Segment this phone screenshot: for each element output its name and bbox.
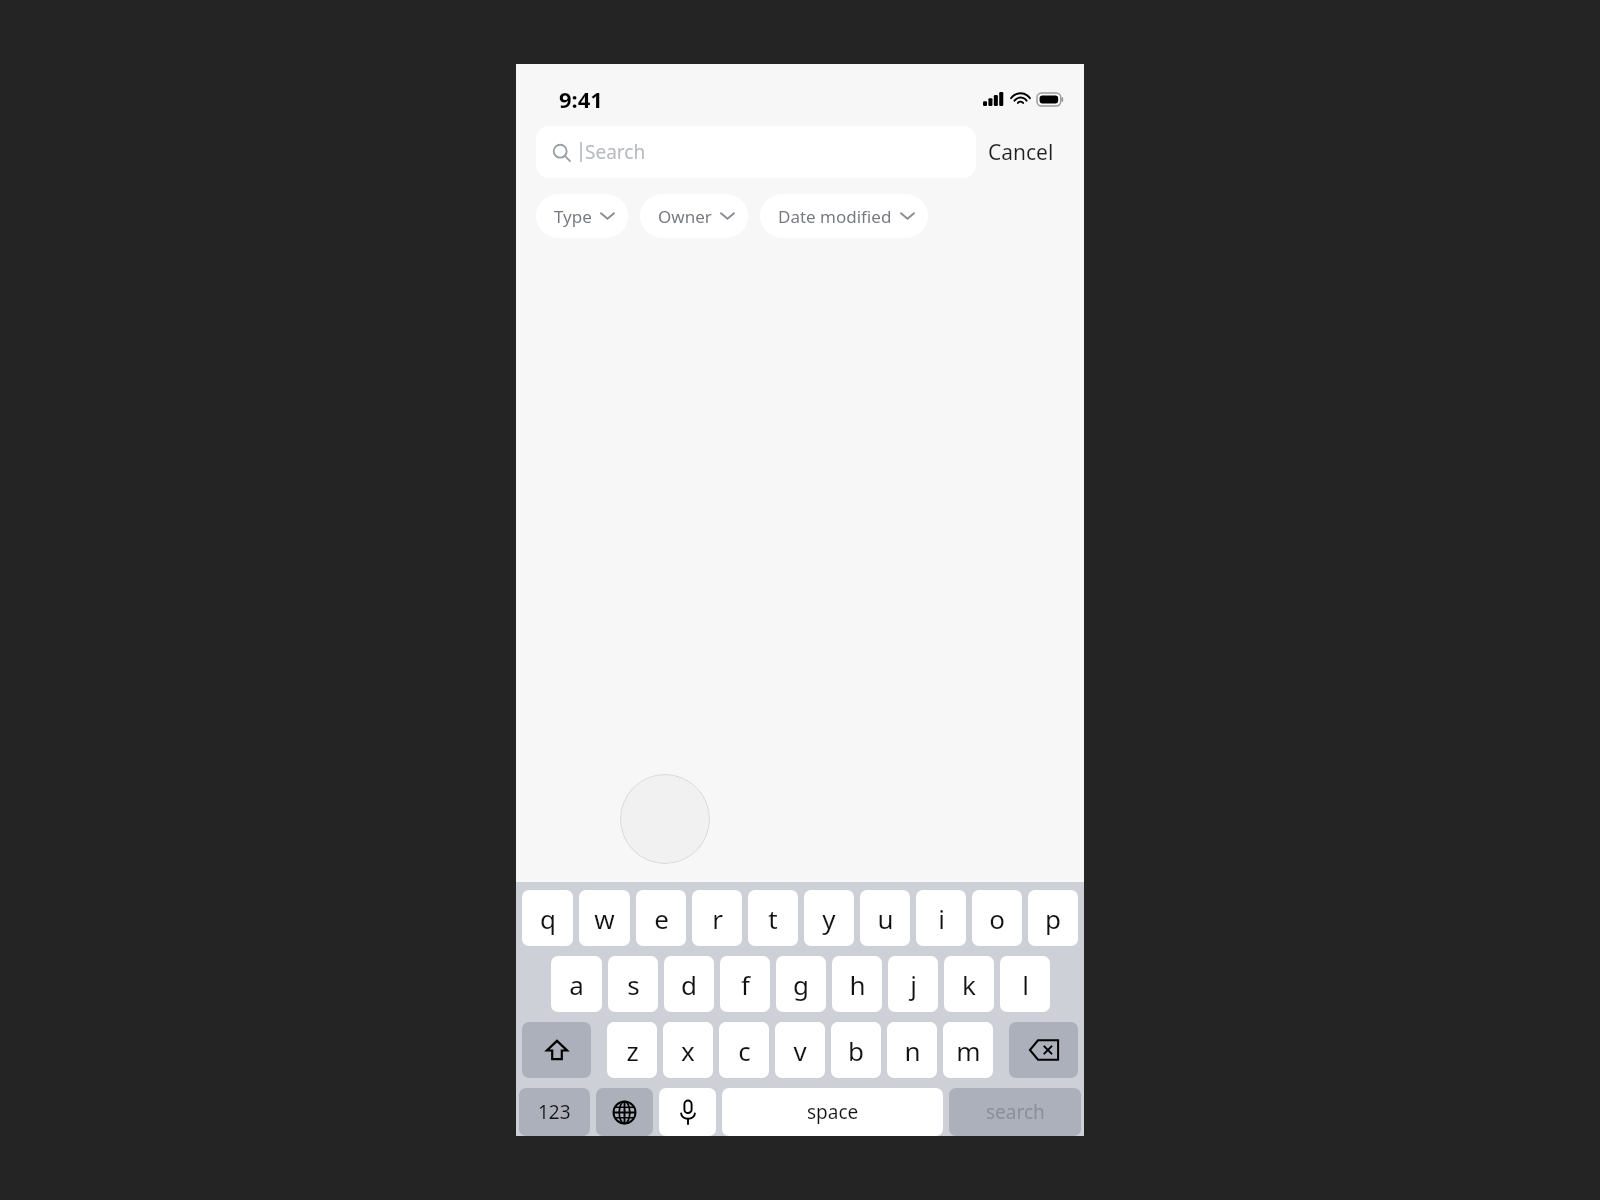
staticText: Cancel bbox=[988, 138, 1054, 167]
button[interactable]: Owner bbox=[640, 194, 748, 238]
staticText: b bbox=[848, 1033, 864, 1068]
staticText: r bbox=[712, 901, 723, 936]
button[interactable]: search bbox=[949, 1088, 1081, 1136]
button[interactable]: z bbox=[607, 1022, 657, 1078]
button[interactable]: Search bbox=[536, 126, 976, 178]
button[interactable]: y bbox=[804, 890, 854, 946]
button[interactable]: v bbox=[775, 1022, 825, 1078]
staticText: x bbox=[681, 1033, 695, 1068]
staticText: c bbox=[738, 1033, 751, 1068]
staticText: o bbox=[989, 901, 1005, 936]
button[interactable]: Backspace bbox=[1009, 1022, 1078, 1078]
staticText: 123 bbox=[538, 1099, 571, 1125]
staticText: j bbox=[910, 967, 917, 1002]
button[interactable]: k bbox=[944, 956, 994, 1012]
staticText: space bbox=[807, 1099, 859, 1125]
staticText: n bbox=[904, 1033, 921, 1068]
staticText: f bbox=[741, 967, 750, 1002]
button[interactable]: Date modified bbox=[760, 194, 928, 238]
button[interactable]: t bbox=[748, 890, 798, 946]
staticText: q bbox=[540, 901, 556, 936]
staticText: u bbox=[877, 901, 894, 936]
staticText: h bbox=[849, 967, 866, 1002]
button[interactable]: space bbox=[722, 1088, 943, 1136]
staticText: k bbox=[962, 967, 976, 1002]
button[interactable]: x bbox=[663, 1022, 713, 1078]
button[interactable]: c bbox=[719, 1022, 769, 1078]
button[interactable]: d bbox=[664, 956, 714, 1012]
staticText: y bbox=[822, 901, 836, 936]
button[interactable]: f bbox=[720, 956, 770, 1012]
button[interactable]: g bbox=[776, 956, 826, 1012]
staticText: e bbox=[654, 901, 669, 936]
button[interactable]: s bbox=[608, 956, 658, 1012]
staticText: p bbox=[1045, 901, 1061, 936]
button[interactable]: q bbox=[522, 890, 573, 946]
button[interactable]: a bbox=[551, 956, 602, 1012]
staticText: m bbox=[956, 1033, 981, 1068]
staticText: d bbox=[681, 967, 697, 1002]
staticText: Type bbox=[554, 205, 592, 228]
staticText: Date modified bbox=[778, 205, 892, 228]
button[interactable]: Type bbox=[536, 194, 628, 238]
button[interactable]: b bbox=[831, 1022, 881, 1078]
button[interactable]: l bbox=[1000, 956, 1050, 1012]
button[interactable]: Cancel bbox=[976, 130, 1066, 175]
button[interactable]: e bbox=[636, 890, 686, 946]
staticText: Owner bbox=[658, 205, 712, 228]
button[interactable]: r bbox=[692, 890, 742, 946]
staticText: a bbox=[569, 967, 584, 1002]
button[interactable]: 123 bbox=[519, 1088, 590, 1136]
button[interactable]: j bbox=[888, 956, 938, 1012]
staticText: w bbox=[594, 901, 615, 936]
button[interactable]: m bbox=[943, 1022, 993, 1078]
staticText: t bbox=[768, 901, 778, 936]
button[interactable]: u bbox=[860, 890, 910, 946]
staticText: 9:41 bbox=[559, 84, 603, 114]
staticText: Search bbox=[585, 139, 646, 165]
staticText: v bbox=[793, 1033, 807, 1068]
button[interactable]: i bbox=[916, 890, 966, 946]
button[interactable]: o bbox=[972, 890, 1022, 946]
staticText: search bbox=[986, 1099, 1045, 1125]
staticText: g bbox=[793, 967, 809, 1002]
button[interactable]: Shift bbox=[522, 1022, 591, 1078]
button[interactable]: p bbox=[1028, 890, 1078, 946]
staticText: l bbox=[1022, 967, 1029, 1002]
button[interactable]: n bbox=[887, 1022, 937, 1078]
button[interactable]: h bbox=[832, 956, 882, 1012]
staticText: s bbox=[627, 967, 640, 1002]
button[interactable]: w bbox=[579, 890, 630, 946]
staticText: i bbox=[938, 901, 945, 936]
button[interactable]: Voice input bbox=[659, 1088, 716, 1136]
button[interactable]: Change keyboard language bbox=[596, 1088, 653, 1136]
staticText: z bbox=[626, 1033, 639, 1068]
